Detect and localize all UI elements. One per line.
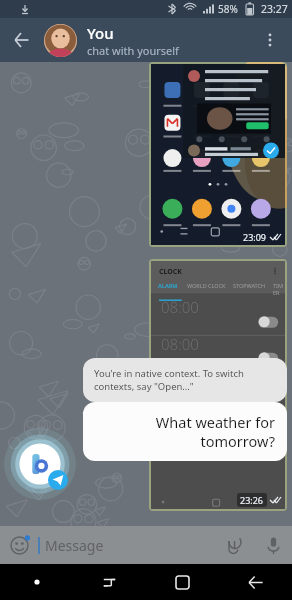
button[interactable]: Voice message bbox=[254, 526, 292, 564]
button[interactable]: Home bbox=[146, 564, 219, 600]
staticText: You're in native context. To switch cont… bbox=[94, 367, 276, 393]
button[interactable]: Emoji bbox=[0, 526, 38, 564]
button[interactable]: Menu dot bbox=[0, 564, 73, 600]
button[interactable]: Back bbox=[219, 564, 292, 600]
staticText: STOPWATCH bbox=[233, 282, 266, 289]
staticText: What weather for tomorrow? bbox=[95, 412, 275, 451]
staticText: 58% bbox=[218, 2, 238, 16]
button[interactable]: Back bbox=[0, 18, 44, 62]
staticText: TIMER bbox=[273, 282, 285, 296]
button[interactable]: CLOCK bbox=[151, 261, 285, 509]
staticText: Message bbox=[45, 536, 216, 555]
staticText: CLOCK bbox=[159, 267, 182, 277]
button[interactable]: More options bbox=[248, 18, 292, 62]
button[interactable]: What weather for tomorrow? bbox=[95, 412, 275, 451]
button[interactable]: Bixby Voice bbox=[4, 428, 76, 500]
staticText: You bbox=[87, 23, 114, 43]
staticText: 08:00 bbox=[161, 297, 199, 317]
staticText: 23:09 bbox=[243, 231, 267, 243]
staticText: chat with yourself bbox=[87, 43, 179, 58]
button[interactable]: 23:09 bbox=[151, 64, 285, 245]
staticText: WORLD CLOCK bbox=[187, 282, 226, 289]
button[interactable]: Recents bbox=[73, 564, 146, 600]
button[interactable]: You're in native context. To switch cont… bbox=[94, 367, 276, 393]
button[interactable]: Attach bbox=[216, 526, 254, 564]
staticText: 23:26 bbox=[240, 494, 264, 506]
staticText: 23:27 bbox=[261, 2, 288, 16]
staticText: 08:00 bbox=[161, 334, 199, 354]
staticText: ALARM bbox=[158, 282, 178, 289]
